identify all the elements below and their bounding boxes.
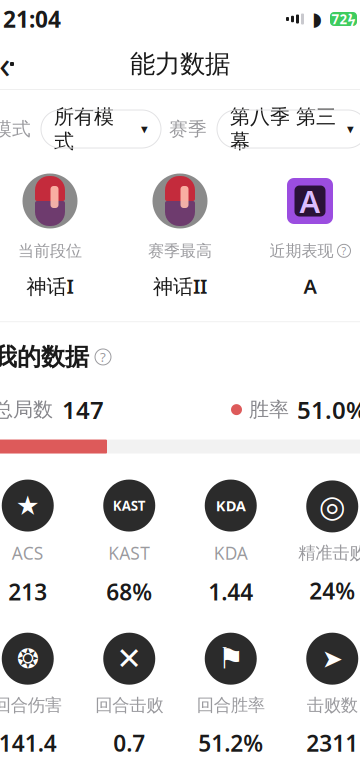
staticText: 回合胜率 [197, 695, 265, 716]
staticText: 51.0% [297, 394, 360, 426]
staticText: KDA [214, 542, 248, 565]
staticText: 神话I [26, 273, 73, 299]
staticText: ? [341, 244, 346, 258]
staticText: 胜率 [249, 397, 289, 422]
button[interactable]: 返回 [0, 42, 27, 86]
staticText: 赛季最高 [148, 241, 212, 261]
staticText: 总局数 [0, 397, 53, 422]
staticText: 当前段位 [18, 241, 82, 261]
staticText: ? [100, 348, 106, 366]
staticText: 68% [106, 577, 152, 607]
staticText: ACS [12, 542, 44, 565]
staticText: 所有模式 [54, 104, 114, 153]
staticText: 72 [331, 10, 347, 28]
staticText: 近期表现 [269, 241, 333, 261]
staticText: 回合伤害 [0, 695, 62, 716]
staticText: 回合击败 [95, 695, 163, 716]
staticText: 模式 [0, 117, 31, 140]
staticText: 神话II [153, 273, 207, 299]
staticText: ▾ [347, 121, 354, 136]
staticText: 击败数 [307, 695, 358, 716]
staticText: 21:04 [3, 4, 61, 34]
staticText: ‹ [0, 39, 11, 89]
button[interactable]: 第八季 第三幕 [217, 110, 360, 148]
button[interactable]: 所有模式 [41, 110, 161, 148]
staticText: ✕ [116, 641, 142, 676]
staticText: ◗ [312, 8, 322, 30]
staticText: KAST [113, 497, 146, 514]
staticText: 能力数据 [130, 48, 230, 79]
staticText: ⚑ [218, 642, 244, 675]
staticText: ▾ [141, 121, 148, 136]
staticText: KAST [108, 542, 150, 565]
staticText: 我的数据 [0, 342, 89, 372]
staticText: ϟ [347, 9, 355, 29]
button[interactable]: 数据说明 [95, 349, 111, 365]
staticText: A [299, 181, 320, 221]
staticText: ➤ [322, 644, 343, 673]
staticText: 0.7 [113, 728, 145, 758]
staticText: ◎ [319, 489, 346, 524]
staticText: 1.44 [208, 577, 253, 607]
staticText: 24% [309, 576, 355, 606]
staticText: 精准击败 [298, 542, 360, 564]
staticText: 第八季 第三幕 [230, 104, 336, 153]
staticText: 213 [8, 577, 47, 607]
staticText: 141.4 [0, 728, 57, 758]
staticText: A [303, 273, 316, 299]
staticText: 51.2% [198, 728, 263, 758]
staticText: 赛季 [169, 117, 207, 140]
staticText: KDA [216, 496, 246, 515]
staticText: ★ [16, 490, 40, 521]
staticText: ❂ [17, 643, 39, 674]
staticText: 147 [62, 394, 104, 426]
staticText: 2311 [306, 728, 358, 758]
